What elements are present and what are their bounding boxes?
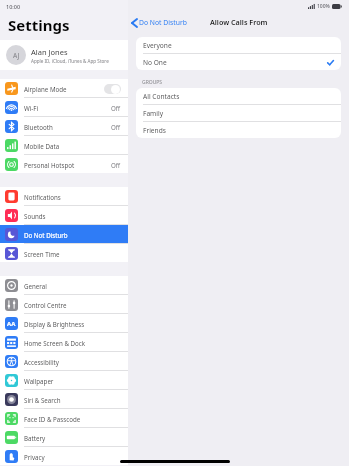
staticText: No One: [143, 58, 167, 67]
button[interactable]: Control Centre: [0, 295, 128, 313]
staticText: Allow Calls From: [210, 17, 268, 27]
button[interactable]: Home Screen & Dock: [0, 333, 128, 351]
button[interactable]: Wallpaper: [0, 371, 128, 389]
button[interactable]: General: [0, 276, 128, 294]
button[interactable]: Battery: [0, 428, 128, 446]
staticText: General: [24, 282, 121, 290]
button[interactable]: Do Not Disturb: [128, 16, 191, 29]
staticText: Bluetooth: [24, 123, 111, 131]
button[interactable]: Sounds: [0, 206, 128, 224]
staticText: Accessibility: [24, 358, 121, 366]
button[interactable]: Family: [136, 105, 341, 121]
staticText: Notifications: [24, 193, 121, 201]
button[interactable]: Everyone: [136, 37, 341, 53]
staticText: Control Centre: [24, 301, 121, 309]
button[interactable]: AJ: [0, 40, 128, 70]
button[interactable]: Privacy: [0, 447, 128, 465]
staticText: Sounds: [24, 212, 121, 220]
button[interactable]: Face ID & Passcode: [0, 409, 128, 427]
staticText: Do Not Disturb: [24, 231, 121, 239]
staticText: Off: [111, 104, 121, 112]
staticText: 10:00: [6, 3, 21, 10]
staticText: Wi-Fi: [24, 104, 111, 112]
button[interactable]: No One: [136, 54, 341, 70]
staticText: Alan Jones: [31, 47, 68, 57]
button[interactable]: Notifications: [0, 187, 128, 205]
staticText: AJ: [13, 51, 20, 60]
button[interactable]: Wi-Fi: [0, 98, 128, 116]
button[interactable]: Accessibility: [0, 352, 128, 370]
button[interactable]: Personal Hotspot: [0, 155, 128, 173]
staticText: Mobile Data: [24, 142, 121, 150]
staticText: Wallpaper: [24, 377, 121, 385]
staticText: Off: [111, 123, 121, 131]
staticText: GROUPS: [142, 79, 163, 86]
button[interactable]: Siri & Search: [0, 390, 128, 408]
staticText: Off: [111, 161, 121, 169]
staticText: 100%: [317, 3, 330, 10]
staticText: AA: [7, 320, 16, 328]
staticText: Personal Hotspot: [24, 161, 111, 169]
button[interactable]: All Contacts: [136, 88, 341, 104]
staticText: Display & Brightness: [24, 320, 121, 328]
staticText: Face ID & Passcode: [24, 415, 121, 423]
staticText: Friends: [143, 126, 166, 135]
staticText: Family: [143, 109, 164, 118]
staticText: Home Screen & Dock: [24, 339, 121, 347]
staticText: Settings: [8, 15, 70, 35]
button[interactable]: Friends: [136, 122, 341, 138]
staticText: Airplane Mode: [24, 85, 104, 93]
button[interactable]: Do Not Disturb: [0, 225, 128, 243]
staticText: All Contacts: [143, 92, 180, 101]
staticText: Siri & Search: [24, 396, 121, 404]
staticText: Privacy: [24, 453, 121, 461]
staticText: Do Not Disturb: [139, 18, 187, 27]
staticText: Apple ID, iCloud, iTunes & App Store: [31, 58, 109, 64]
staticText: Screen Time: [24, 250, 121, 258]
button[interactable]: Bluetooth: [0, 117, 128, 135]
button[interactable]: Mobile Data: [0, 136, 128, 154]
button[interactable]: AA: [0, 314, 128, 332]
button[interactable]: Airplane Mode: [0, 79, 128, 97]
staticText: Battery: [24, 434, 121, 442]
button[interactable]: Screen Time: [0, 244, 128, 262]
staticText: Everyone: [143, 41, 172, 50]
